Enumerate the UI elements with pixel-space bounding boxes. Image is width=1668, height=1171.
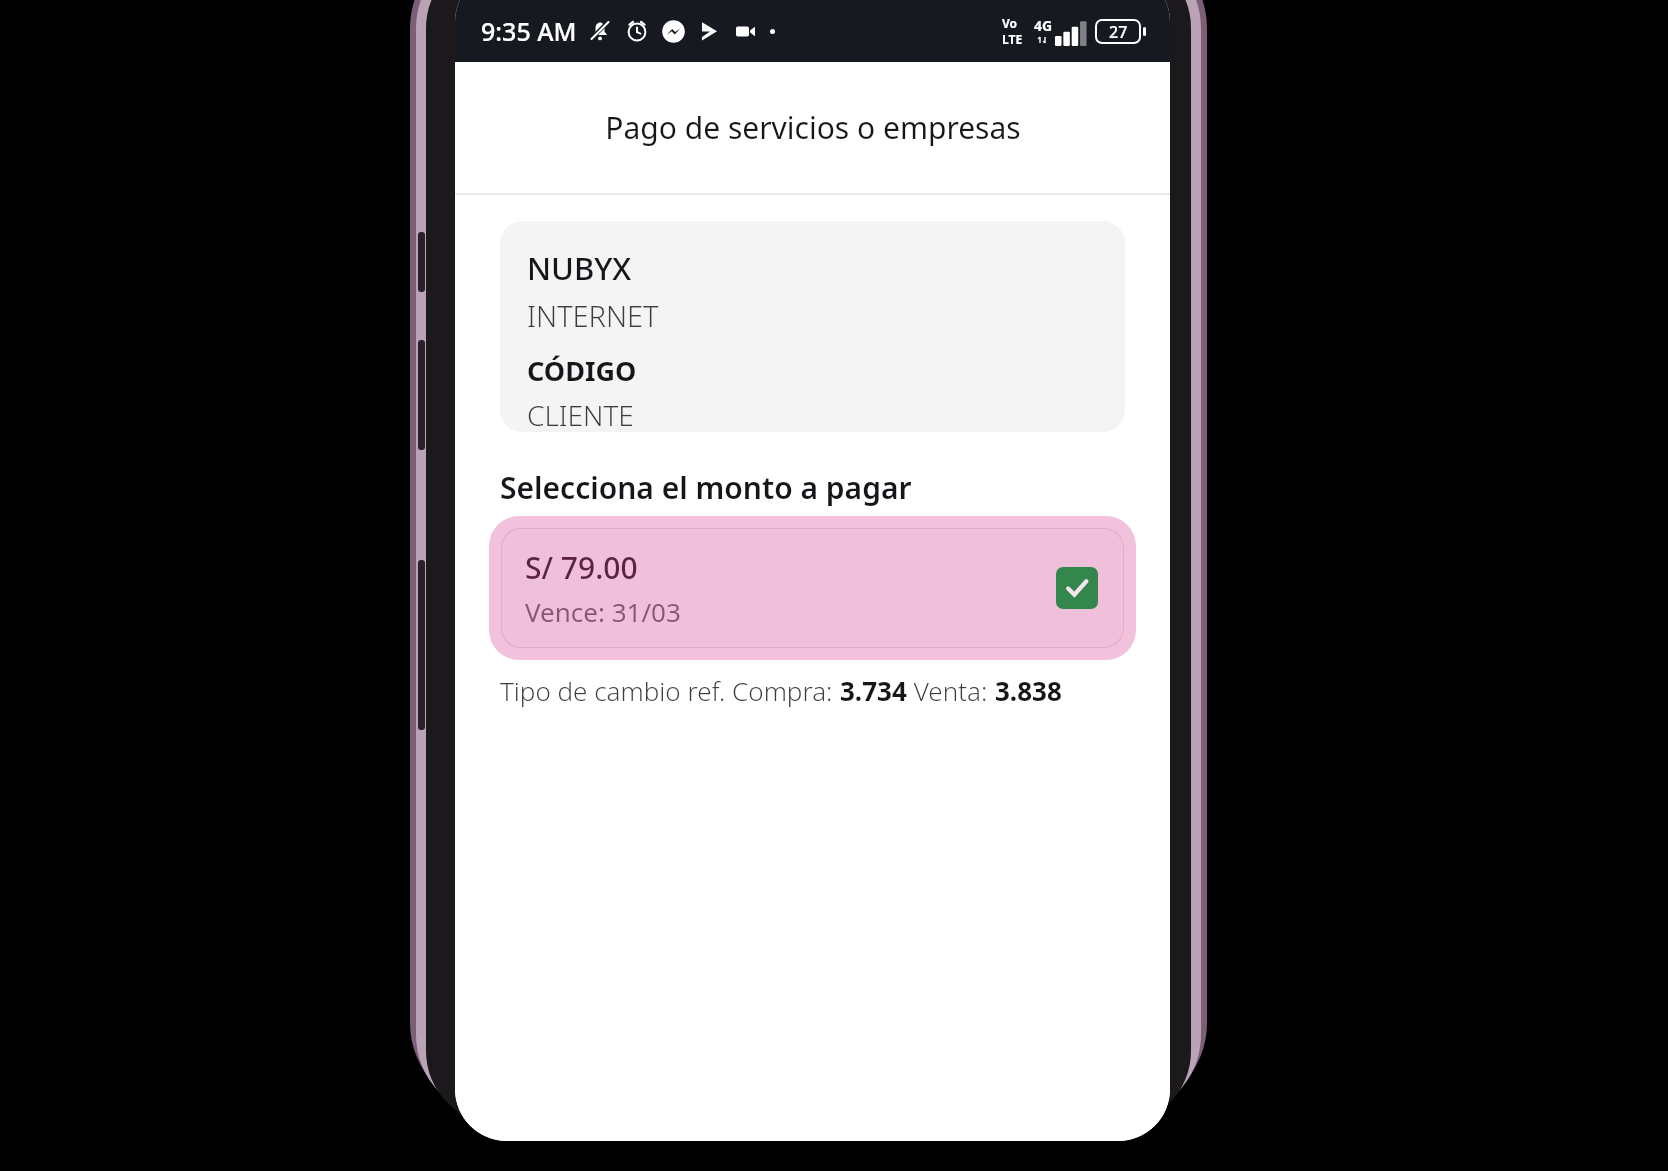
button[interactable]: S/ 79.00 [489,516,1136,660]
staticText: Vence: 31/03 [525,594,681,629]
staticText: NUBYX [527,247,632,289]
staticText: 3.734 [840,673,907,708]
staticText: INTERNET [527,296,659,335]
staticText: 27 [1109,21,1128,42]
staticText: Venta: [907,673,995,708]
staticText: 3.838 [995,673,1062,708]
staticText: CÓDIGO [527,352,637,389]
button[interactable]: Monto seleccionado [1056,567,1098,609]
staticText: Pago de servicios o empresas [605,107,1021,148]
staticText: CLIENTE [527,396,634,432]
staticText: 9:35 AM [481,14,577,48]
button[interactable]: NUBYX [500,221,1125,432]
staticText: Vo [1002,15,1018,31]
staticText: Tipo de cambio ref. Compra: [500,673,840,708]
staticText: Selecciona el monto a pagar [500,467,912,508]
staticText: 4G [1034,16,1053,35]
staticText: LTE [1002,31,1023,47]
staticText: S/ 79.00 [525,547,638,588]
